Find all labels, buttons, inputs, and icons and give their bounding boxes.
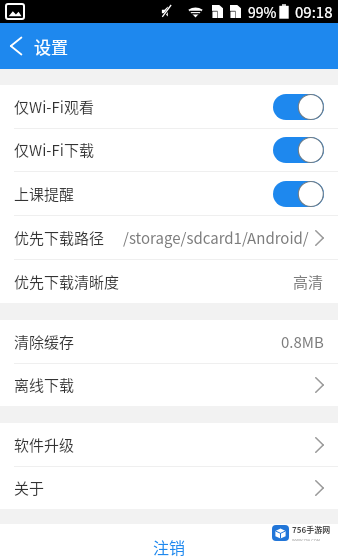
staticText: 注销	[153, 535, 186, 557]
button[interactable]: 清除缓存	[0, 320, 338, 363]
staticText: 仅Wi-Fi观看	[14, 96, 94, 118]
staticText: 离线下载	[14, 374, 75, 396]
staticText: /storage/sdcard1/Android/	[123, 227, 309, 249]
button[interactable]: 仅Wi-Fi下载	[0, 129, 338, 171]
button[interactable]: 上课提醒	[0, 172, 338, 215]
staticText: 99%	[248, 2, 277, 22]
button[interactable]: 软件升级	[0, 423, 338, 466]
button[interactable]: 仅Wi-Fi观看	[0, 85, 338, 128]
staticText: 关于	[14, 477, 45, 499]
button[interactable]: 优先下载路径	[0, 216, 338, 259]
staticText: 仅Wi-Fi下载	[14, 139, 94, 161]
staticText: 优先下载路径	[14, 227, 105, 249]
staticText: 高清	[293, 271, 324, 293]
button[interactable]: 离线下载	[0, 364, 338, 406]
button[interactable]: 关于	[0, 467, 338, 509]
staticText: 软件升级	[14, 434, 75, 456]
staticText: 设置	[34, 34, 68, 59]
staticText: 756手游网	[292, 524, 331, 536]
button[interactable]: Back	[0, 23, 32, 69]
staticText: 优先下载清晰度	[14, 271, 120, 293]
staticText: 0.8MB	[281, 331, 324, 353]
staticText: 上课提醒	[14, 183, 75, 205]
staticText: 清除缓存	[14, 331, 75, 353]
staticText: WWW.756.COM	[292, 537, 320, 541]
button[interactable]: 注销	[0, 524, 338, 557]
staticText: 09:18	[295, 1, 333, 23]
button[interactable]: 优先下载清晰度	[0, 260, 338, 303]
